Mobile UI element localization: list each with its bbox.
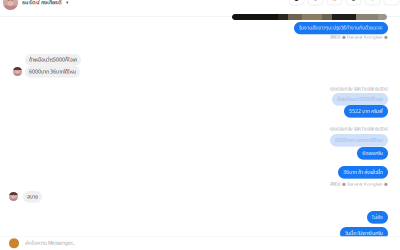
staticText: คุณตอบกลับ ข้อความของ ธนรัตน์ — [330, 126, 388, 132]
staticText: สบาย — [27, 193, 38, 201]
button[interactable]: Message action — [346, 0, 361, 5]
staticText: ส่งโดย ● Danarat Kongkan ● — [330, 34, 388, 40]
staticText: ถ้าเหมือนว่าร5000ก็โอเค — [29, 56, 77, 64]
staticText: 6000บาท 36บาทได้ไหม — [29, 68, 76, 76]
staticText: วันนี้จะไปเอาเงินครับ — [345, 229, 383, 237]
button[interactable]: Message action — [384, 0, 399, 5]
button[interactable]: Message action — [289, 0, 304, 5]
staticText: คุณตอบกลับ ข้อความของ ธนรัตน์ — [330, 86, 388, 92]
staticText: ธนรัตน์ กงเกียรติ — [22, 0, 62, 7]
staticText: 36บาท ถ้า ส่งเเล้วนี้ท — [343, 168, 383, 176]
staticText: ส่งข้อความ Messenger... — [25, 240, 75, 247]
button[interactable]: Message action — [327, 0, 342, 5]
staticText: รับงานสั่งยาวๆนะปรุงวิธีทำงานกันด้วยนะคะ — [299, 24, 383, 32]
staticText: 5522 บาท ครับพี่ — [349, 107, 383, 115]
staticText: ส่งโดย ● Danarat Kongkan ● — [330, 181, 388, 187]
button[interactable]: Message action — [308, 0, 323, 5]
staticText: จัดเลยครับ — [362, 149, 383, 157]
button[interactable]: Message action — [365, 0, 380, 5]
staticText: ไม่ยัง — [372, 213, 383, 221]
staticText: 6000บาท ลดราคาได้ไหม — [335, 136, 383, 144]
staticText: ▾ — [66, 0, 68, 5]
button[interactable]: ธนรัตน์ กงเกียรติ — [3, 0, 203, 10]
staticText: ถ้าเหมือนว่า5000ก็โอเค — [337, 95, 383, 103]
